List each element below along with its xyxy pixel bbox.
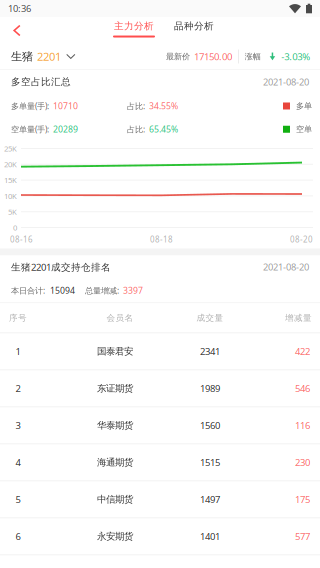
staticText: 422 bbox=[295, 345, 310, 358]
staticText: 涨幅 bbox=[245, 51, 261, 62]
staticText: 2021-08-20 bbox=[263, 261, 309, 273]
staticText: 10K bbox=[4, 191, 17, 201]
staticText: 17150.00 bbox=[194, 50, 232, 63]
staticText: 6 bbox=[15, 530, 20, 543]
staticText: 1 bbox=[15, 345, 20, 358]
staticText: 华泰期货 bbox=[97, 419, 133, 431]
staticText: 生猪 bbox=[11, 49, 33, 63]
staticText: 116 bbox=[295, 419, 310, 432]
staticText: 多单 bbox=[296, 101, 312, 111]
staticText: 增减量 bbox=[285, 312, 312, 323]
staticText: 08-18 bbox=[150, 234, 173, 245]
button[interactable]: 生猪 bbox=[11, 44, 76, 69]
staticText: 10:36 bbox=[8, 2, 31, 15]
staticText: 空单 bbox=[296, 124, 312, 134]
staticText: 国泰君安 bbox=[97, 345, 133, 357]
staticText: 1560 bbox=[200, 419, 220, 432]
staticText: 5 bbox=[15, 493, 20, 506]
staticText: 序号 bbox=[9, 312, 27, 323]
staticText: 577 bbox=[295, 530, 310, 543]
button[interactable]: 品种分析 bbox=[172, 17, 216, 44]
staticText: 最新价 bbox=[166, 51, 190, 62]
staticText: 4 bbox=[15, 456, 20, 469]
staticText: 会员名 bbox=[106, 312, 133, 323]
staticText: 永安期货 bbox=[97, 530, 133, 542]
staticText: -3.03% bbox=[281, 50, 310, 63]
staticText: 空单量(手): bbox=[11, 124, 49, 135]
staticText: 成交量 bbox=[196, 312, 223, 323]
staticText: 2201 bbox=[37, 49, 61, 64]
staticText: 1515 bbox=[200, 456, 220, 469]
staticText: 1497 bbox=[200, 493, 220, 506]
staticText: 东证期货 bbox=[97, 382, 133, 394]
staticText: 0 bbox=[13, 222, 17, 233]
staticText: 175 bbox=[295, 493, 310, 506]
button[interactable]: 4 bbox=[0, 444, 320, 481]
staticText: 546 bbox=[295, 382, 310, 395]
staticText: 08-16 bbox=[10, 234, 33, 245]
staticText: 品种分析 bbox=[174, 20, 214, 32]
staticText: 多空占比汇总 bbox=[11, 76, 71, 88]
staticText: 1401 bbox=[200, 530, 220, 543]
staticText: 230 bbox=[295, 456, 310, 469]
button[interactable]: 主力分析 bbox=[112, 17, 156, 44]
button[interactable]: 2 bbox=[0, 370, 320, 407]
staticText: 中信期货 bbox=[97, 493, 133, 505]
staticText: 20289 bbox=[53, 123, 78, 135]
staticText: 34.55% bbox=[149, 100, 178, 112]
button[interactable]: 5 bbox=[0, 481, 320, 518]
staticText: 占比: bbox=[127, 100, 145, 112]
staticText: 25K bbox=[4, 143, 17, 154]
staticText: 2 bbox=[15, 382, 20, 395]
staticText: 20K bbox=[4, 159, 17, 169]
staticText: 2341 bbox=[200, 345, 220, 358]
staticText: 3397 bbox=[123, 285, 143, 296]
staticText: 生猪2201成交持仓排名 bbox=[11, 260, 111, 274]
staticText: 总量增减: bbox=[85, 285, 119, 296]
staticText: 占比: bbox=[127, 124, 145, 135]
staticText: 15094 bbox=[50, 285, 75, 296]
button[interactable]: 3 bbox=[0, 407, 320, 444]
staticText: 海通期货 bbox=[97, 456, 133, 468]
staticText: 10710 bbox=[53, 100, 78, 112]
staticText: 本日合计: bbox=[11, 285, 45, 296]
staticText: 主力分析 bbox=[114, 20, 154, 32]
staticText: 2021-08-20 bbox=[263, 75, 309, 88]
staticText: 5K bbox=[8, 206, 17, 217]
staticText: 1989 bbox=[200, 382, 220, 395]
button[interactable]: 6 bbox=[0, 518, 320, 555]
staticText: 65.45% bbox=[149, 123, 178, 135]
staticText: 15K bbox=[4, 175, 17, 185]
button[interactable]: Back bbox=[0, 17, 34, 44]
staticText: 08-20 bbox=[290, 234, 313, 245]
staticText: 多单量(手): bbox=[11, 100, 49, 112]
button[interactable]: 1 bbox=[0, 333, 320, 370]
staticText: 3 bbox=[15, 419, 20, 432]
